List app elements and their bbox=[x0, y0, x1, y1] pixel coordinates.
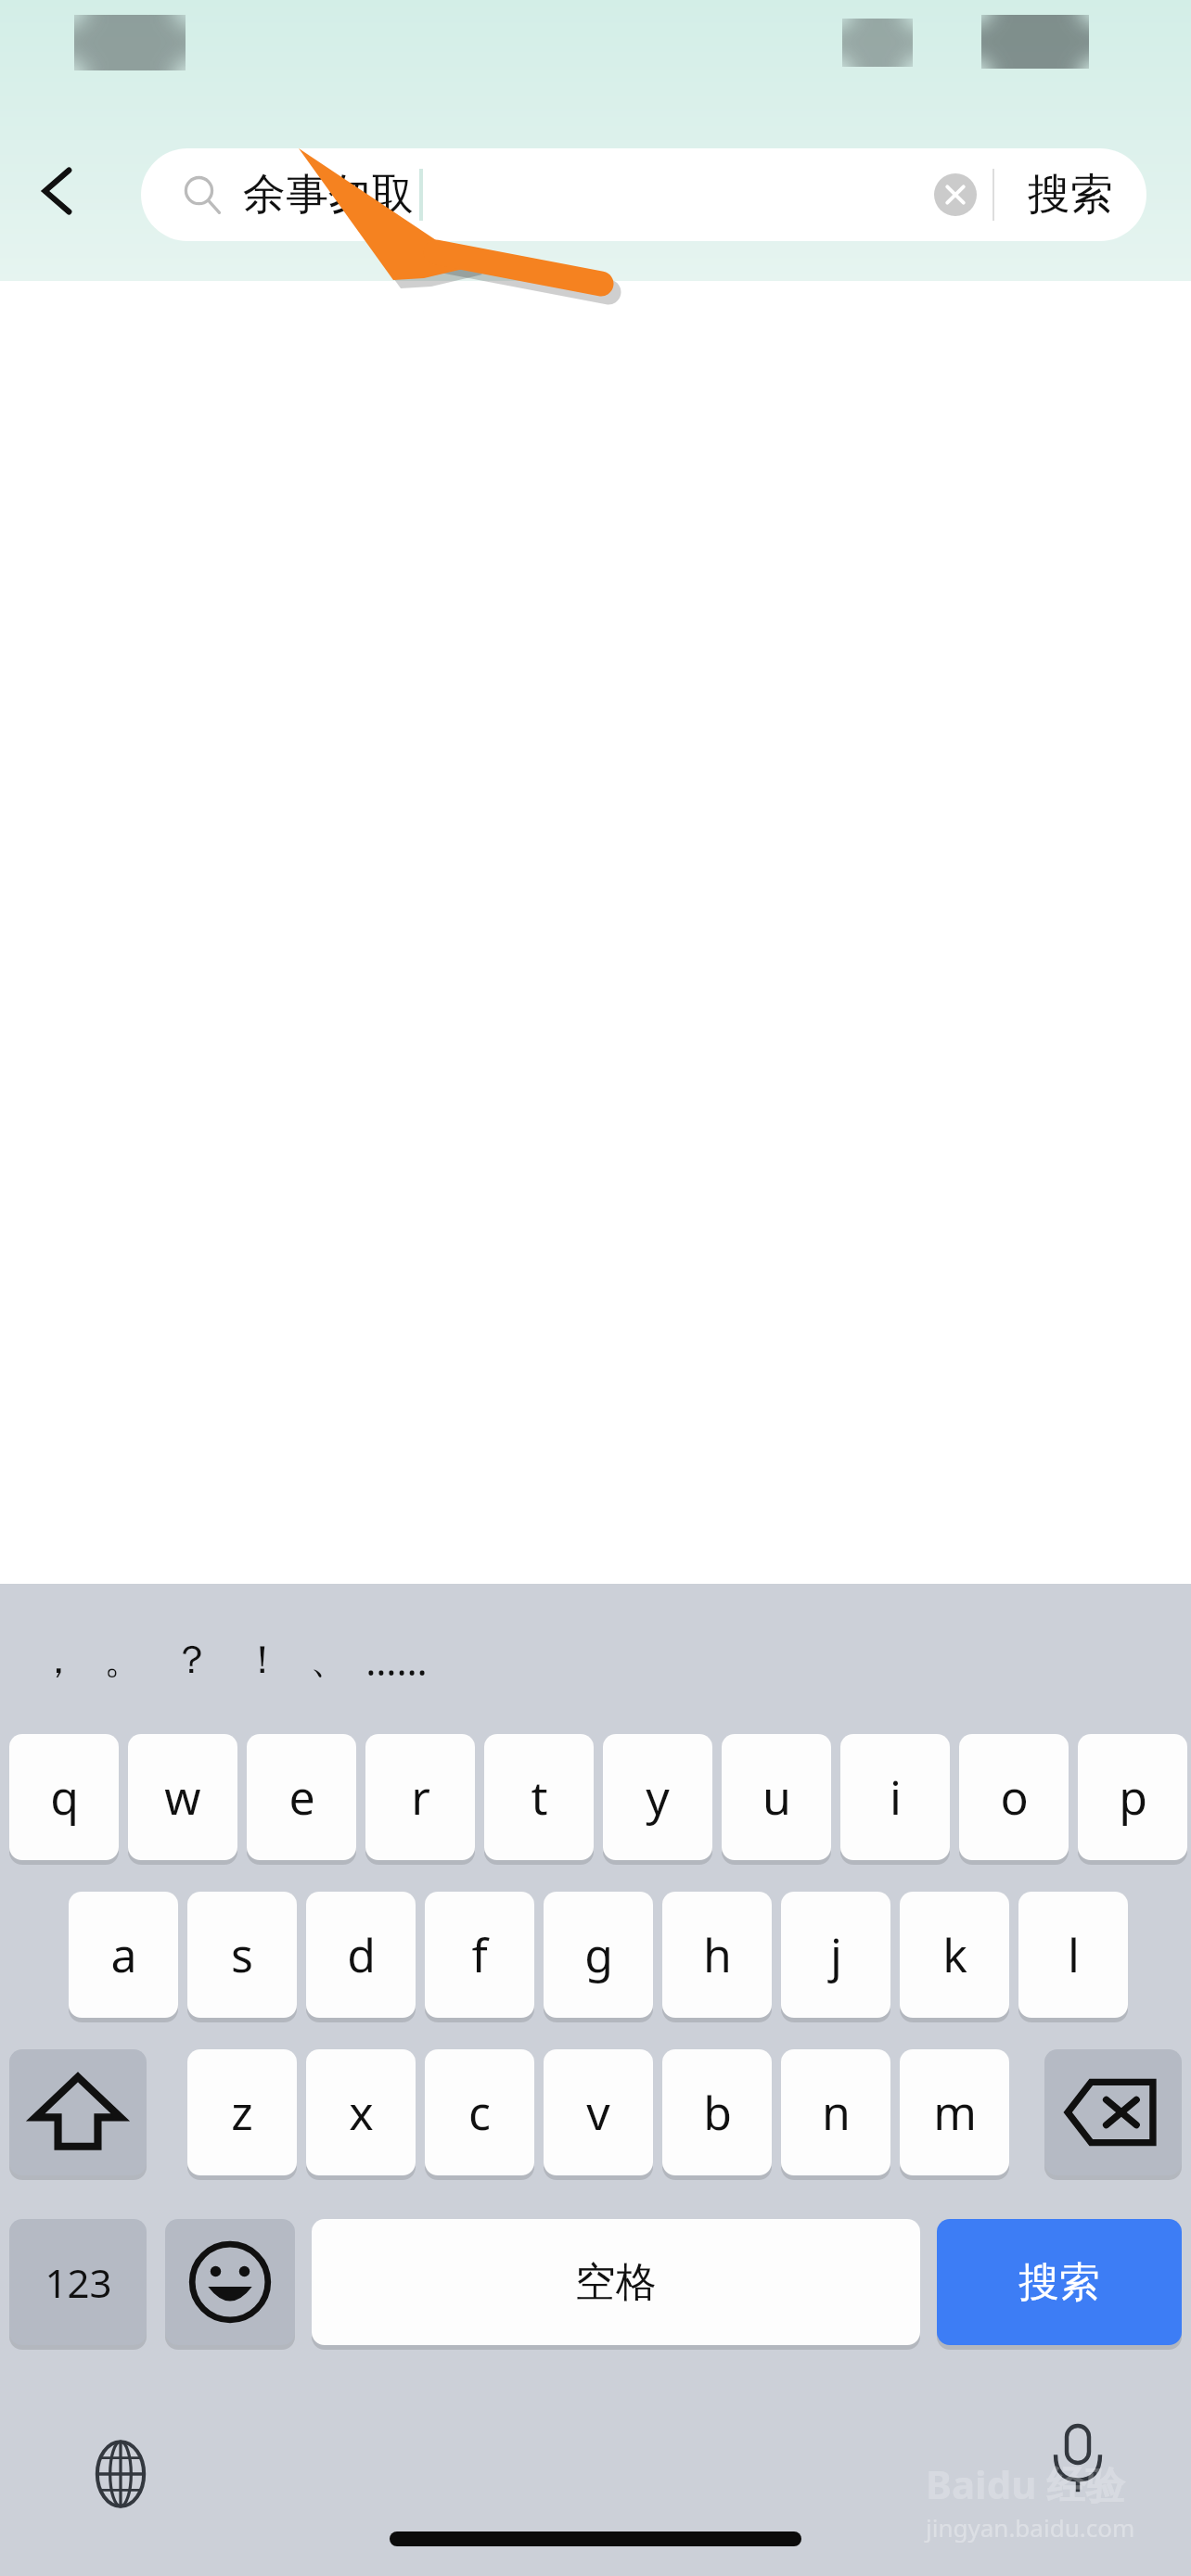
staticText: 余事勿取 bbox=[243, 168, 414, 222]
button[interactable]: n bbox=[781, 2049, 890, 2175]
staticText: m bbox=[933, 2081, 977, 2144]
button[interactable]: Clear bbox=[918, 158, 992, 232]
button[interactable]: 、 bbox=[275, 1621, 384, 1699]
button[interactable]: b bbox=[662, 2049, 772, 2175]
button[interactable]: z bbox=[187, 2049, 297, 2175]
button[interactable]: Emoji bbox=[165, 2219, 295, 2345]
staticText: s bbox=[231, 1923, 253, 1986]
button[interactable]: Shift bbox=[9, 2049, 147, 2175]
button[interactable]: w bbox=[128, 1734, 237, 1860]
button[interactable]: r bbox=[365, 1734, 475, 1860]
staticText: f bbox=[471, 1923, 488, 1986]
button[interactable]: o bbox=[959, 1734, 1069, 1860]
button[interactable]: a bbox=[69, 1892, 178, 2018]
staticText: …… bbox=[365, 1634, 428, 1687]
staticText: y bbox=[646, 1766, 670, 1829]
staticText: ？ bbox=[173, 1636, 211, 1685]
staticText: h bbox=[703, 1923, 732, 1986]
staticText: w bbox=[164, 1766, 201, 1829]
button[interactable]: ！ bbox=[208, 1621, 317, 1699]
button[interactable]: k bbox=[900, 1892, 1009, 2018]
staticText: b bbox=[703, 2081, 732, 2144]
staticText: 、 bbox=[310, 1636, 349, 1685]
button[interactable]: e bbox=[247, 1734, 356, 1860]
button[interactable]: m bbox=[900, 2049, 1009, 2175]
button[interactable]: 余事勿取 bbox=[141, 148, 1146, 241]
button[interactable]: d bbox=[306, 1892, 416, 2018]
button[interactable]: c bbox=[425, 2049, 534, 2175]
staticText: n bbox=[822, 2081, 851, 2144]
button[interactable]: x bbox=[306, 2049, 416, 2175]
staticText: l bbox=[1068, 1923, 1080, 1986]
staticText: r bbox=[411, 1766, 430, 1829]
staticText: a bbox=[110, 1923, 137, 1986]
button[interactable]: ， bbox=[4, 1621, 113, 1699]
staticText: 搜索 bbox=[1018, 2257, 1100, 2308]
button[interactable]: l bbox=[1018, 1892, 1128, 2018]
staticText: v bbox=[586, 2081, 610, 2144]
staticText: p bbox=[1119, 1766, 1147, 1829]
button[interactable]: Backspace bbox=[1044, 2049, 1182, 2175]
button[interactable]: Voice input bbox=[1024, 2405, 1132, 2513]
button[interactable]: v bbox=[544, 2049, 653, 2175]
button[interactable]: i bbox=[840, 1734, 950, 1860]
button[interactable]: 搜索 bbox=[937, 2219, 1182, 2345]
button[interactable]: j bbox=[781, 1892, 890, 2018]
button[interactable]: 搜索 bbox=[994, 148, 1146, 241]
button[interactable]: p bbox=[1078, 1734, 1187, 1860]
button[interactable]: ？ bbox=[137, 1621, 247, 1699]
staticText: ！ bbox=[243, 1636, 282, 1685]
staticText: d bbox=[347, 1923, 376, 1986]
staticText: c bbox=[468, 2081, 491, 2144]
button[interactable]: g bbox=[544, 1892, 653, 2018]
staticText: t bbox=[531, 1766, 548, 1829]
staticText: e bbox=[288, 1766, 315, 1829]
staticText: 空格 bbox=[575, 2257, 657, 2308]
button[interactable]: 123 bbox=[9, 2219, 147, 2345]
staticText: 搜索 bbox=[1028, 168, 1113, 222]
button[interactable]: 。 bbox=[69, 1621, 178, 1699]
staticText: Baidu 经验 bbox=[926, 2457, 1125, 2510]
button[interactable]: …… bbox=[341, 1621, 451, 1699]
button[interactable]: h bbox=[662, 1892, 772, 2018]
staticText: u bbox=[762, 1766, 791, 1829]
staticText: 。 bbox=[104, 1636, 143, 1685]
staticText: jingyan.baidu.com bbox=[926, 2511, 1135, 2544]
button[interactable]: y bbox=[603, 1734, 712, 1860]
button[interactable]: Change language bbox=[67, 2420, 174, 2528]
staticText: o bbox=[1000, 1766, 1029, 1829]
staticText: x bbox=[349, 2081, 374, 2144]
button[interactable]: t bbox=[484, 1734, 594, 1860]
staticText: g bbox=[584, 1923, 613, 1986]
button[interactable]: u bbox=[722, 1734, 831, 1860]
button[interactable]: 空格 bbox=[312, 2219, 920, 2345]
staticText: z bbox=[231, 2081, 253, 2144]
button[interactable]: f bbox=[425, 1892, 534, 2018]
button[interactable]: Back bbox=[6, 139, 109, 243]
staticText: q bbox=[50, 1766, 79, 1829]
button[interactable]: s bbox=[187, 1892, 297, 2018]
staticText: ， bbox=[39, 1636, 78, 1685]
staticText: k bbox=[942, 1923, 967, 1986]
staticText: 123 bbox=[45, 2256, 112, 2309]
staticText: i bbox=[890, 1766, 902, 1829]
staticText: j bbox=[830, 1923, 842, 1986]
button[interactable]: q bbox=[9, 1734, 119, 1860]
